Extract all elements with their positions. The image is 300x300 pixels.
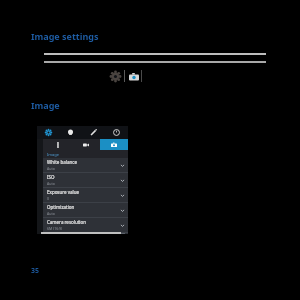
button[interactable]: Optimization <box>43 203 128 217</box>
staticText: Image settings <box>31 30 99 42</box>
staticText: 6M (16:9) <box>47 226 63 231</box>
staticText: 0 <box>47 196 50 201</box>
staticText: White balance <box>47 159 77 165</box>
button[interactable]: Image settings <box>31 30 99 42</box>
button[interactable]: Effects <box>82 126 105 139</box>
button[interactable]: Exposure value <box>43 188 128 202</box>
staticText: 35 <box>31 266 40 276</box>
button[interactable]: ISO <box>43 173 128 187</box>
staticText: Auto <box>47 166 55 171</box>
button[interactable]: More options <box>43 139 72 150</box>
staticText: Exposure value <box>47 189 80 195</box>
button[interactable]: Video <box>72 139 100 150</box>
button[interactable]: Image <box>31 99 60 111</box>
button[interactable]: Camera <box>129 72 139 82</box>
button[interactable]: Photo <box>100 139 128 150</box>
button[interactable]: 35 <box>31 266 40 276</box>
staticText: Image <box>31 99 60 111</box>
staticText: ISO <box>47 174 55 180</box>
button[interactable]: Flash <box>59 126 82 139</box>
staticText: Image <box>47 152 60 157</box>
button[interactable]: Camera resolution <box>43 218 128 232</box>
staticText: Optimization <box>47 204 75 210</box>
button[interactable]: Settings <box>110 71 121 82</box>
button[interactable]: Timer <box>105 126 128 139</box>
staticText: Camera resolution <box>47 219 86 225</box>
button[interactable]: Settings <box>37 126 59 139</box>
button[interactable]: Anti-shake enhancement <box>43 233 128 234</box>
staticText: Auto <box>47 181 55 186</box>
button[interactable]: White balance <box>43 158 128 172</box>
staticText: Auto <box>47 211 55 216</box>
